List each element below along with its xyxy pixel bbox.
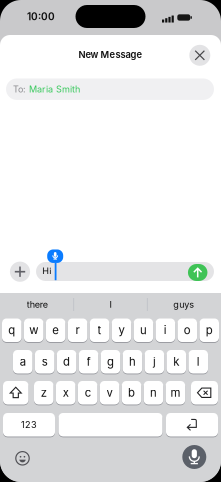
button[interactable]: f: [79, 349, 98, 374]
button[interactable]: [10, 262, 30, 282]
button[interactable]: l: [188, 349, 208, 374]
staticText: j: [153, 355, 156, 369]
staticText: i: [164, 323, 167, 337]
staticText: a: [20, 355, 26, 369]
button[interactable]: x: [56, 380, 75, 405]
button[interactable]: [191, 380, 218, 405]
staticText: k: [173, 355, 179, 369]
button[interactable]: r: [68, 318, 87, 342]
staticText: guys: [173, 299, 194, 310]
staticText: w: [29, 323, 38, 337]
button[interactable]: h: [123, 349, 142, 374]
button[interactable]: guys: [148, 294, 220, 314]
button[interactable]: s: [35, 349, 54, 374]
staticText: New Message: [78, 49, 142, 60]
staticText: d: [63, 355, 70, 369]
button[interactable]: To:: [6, 78, 214, 100]
staticText: I: [109, 299, 111, 310]
staticText: 123: [21, 419, 37, 430]
staticText: f: [87, 355, 91, 369]
button[interactable]: z: [34, 380, 53, 405]
button[interactable]: i: [156, 318, 175, 342]
staticText: v: [107, 386, 113, 400]
staticText: there: [27, 299, 48, 310]
button[interactable]: a: [13, 349, 32, 374]
button[interactable]: g: [101, 349, 120, 374]
button[interactable]: m: [166, 380, 185, 405]
staticText: e: [52, 323, 59, 337]
button[interactable]: d: [57, 349, 76, 374]
button[interactable]: [166, 412, 218, 437]
staticText: z: [41, 386, 47, 400]
button[interactable]: t: [90, 318, 109, 342]
button[interactable]: c: [78, 380, 97, 405]
staticText: p: [206, 323, 213, 337]
button[interactable]: p: [199, 318, 219, 342]
staticText: Hi: [42, 266, 51, 277]
button[interactable]: v: [100, 380, 119, 405]
staticText: 10:00: [27, 10, 55, 23]
button[interactable]: n: [144, 380, 163, 405]
button[interactable]: b: [122, 380, 141, 405]
staticText: b: [128, 386, 135, 400]
staticText: To:: [13, 84, 26, 95]
staticText: q: [8, 323, 15, 337]
staticText: g: [107, 355, 114, 369]
staticText: n: [150, 386, 157, 400]
staticText: c: [85, 386, 91, 400]
button[interactable]: [188, 264, 207, 281]
button[interactable]: 123: [3, 412, 55, 437]
button[interactable]: [189, 45, 210, 66]
staticText: h: [129, 355, 136, 369]
button[interactable]: e: [46, 318, 65, 342]
button[interactable]: [16, 452, 29, 465]
button[interactable]: w: [24, 318, 43, 342]
staticText: y: [118, 323, 124, 337]
button[interactable]: o: [177, 318, 197, 342]
button[interactable]: I: [74, 294, 146, 314]
staticText: m: [170, 386, 180, 400]
button[interactable]: [182, 445, 206, 469]
staticText: Maria Smith: [29, 84, 80, 95]
staticText: s: [42, 355, 48, 369]
button[interactable]: y: [112, 318, 131, 342]
button[interactable]: [47, 249, 63, 263]
staticText: r: [76, 323, 80, 337]
staticText: o: [184, 323, 191, 337]
button[interactable]: [58, 412, 162, 437]
button[interactable]: k: [167, 349, 186, 374]
button[interactable]: [3, 380, 28, 405]
staticText: l: [197, 355, 200, 369]
staticText: u: [140, 323, 147, 337]
button[interactable]: there: [1, 294, 73, 314]
button[interactable]: j: [145, 349, 164, 374]
button[interactable]: u: [134, 318, 153, 342]
button[interactable]: q: [2, 318, 21, 342]
staticText: t: [97, 323, 101, 337]
staticText: x: [63, 386, 69, 400]
